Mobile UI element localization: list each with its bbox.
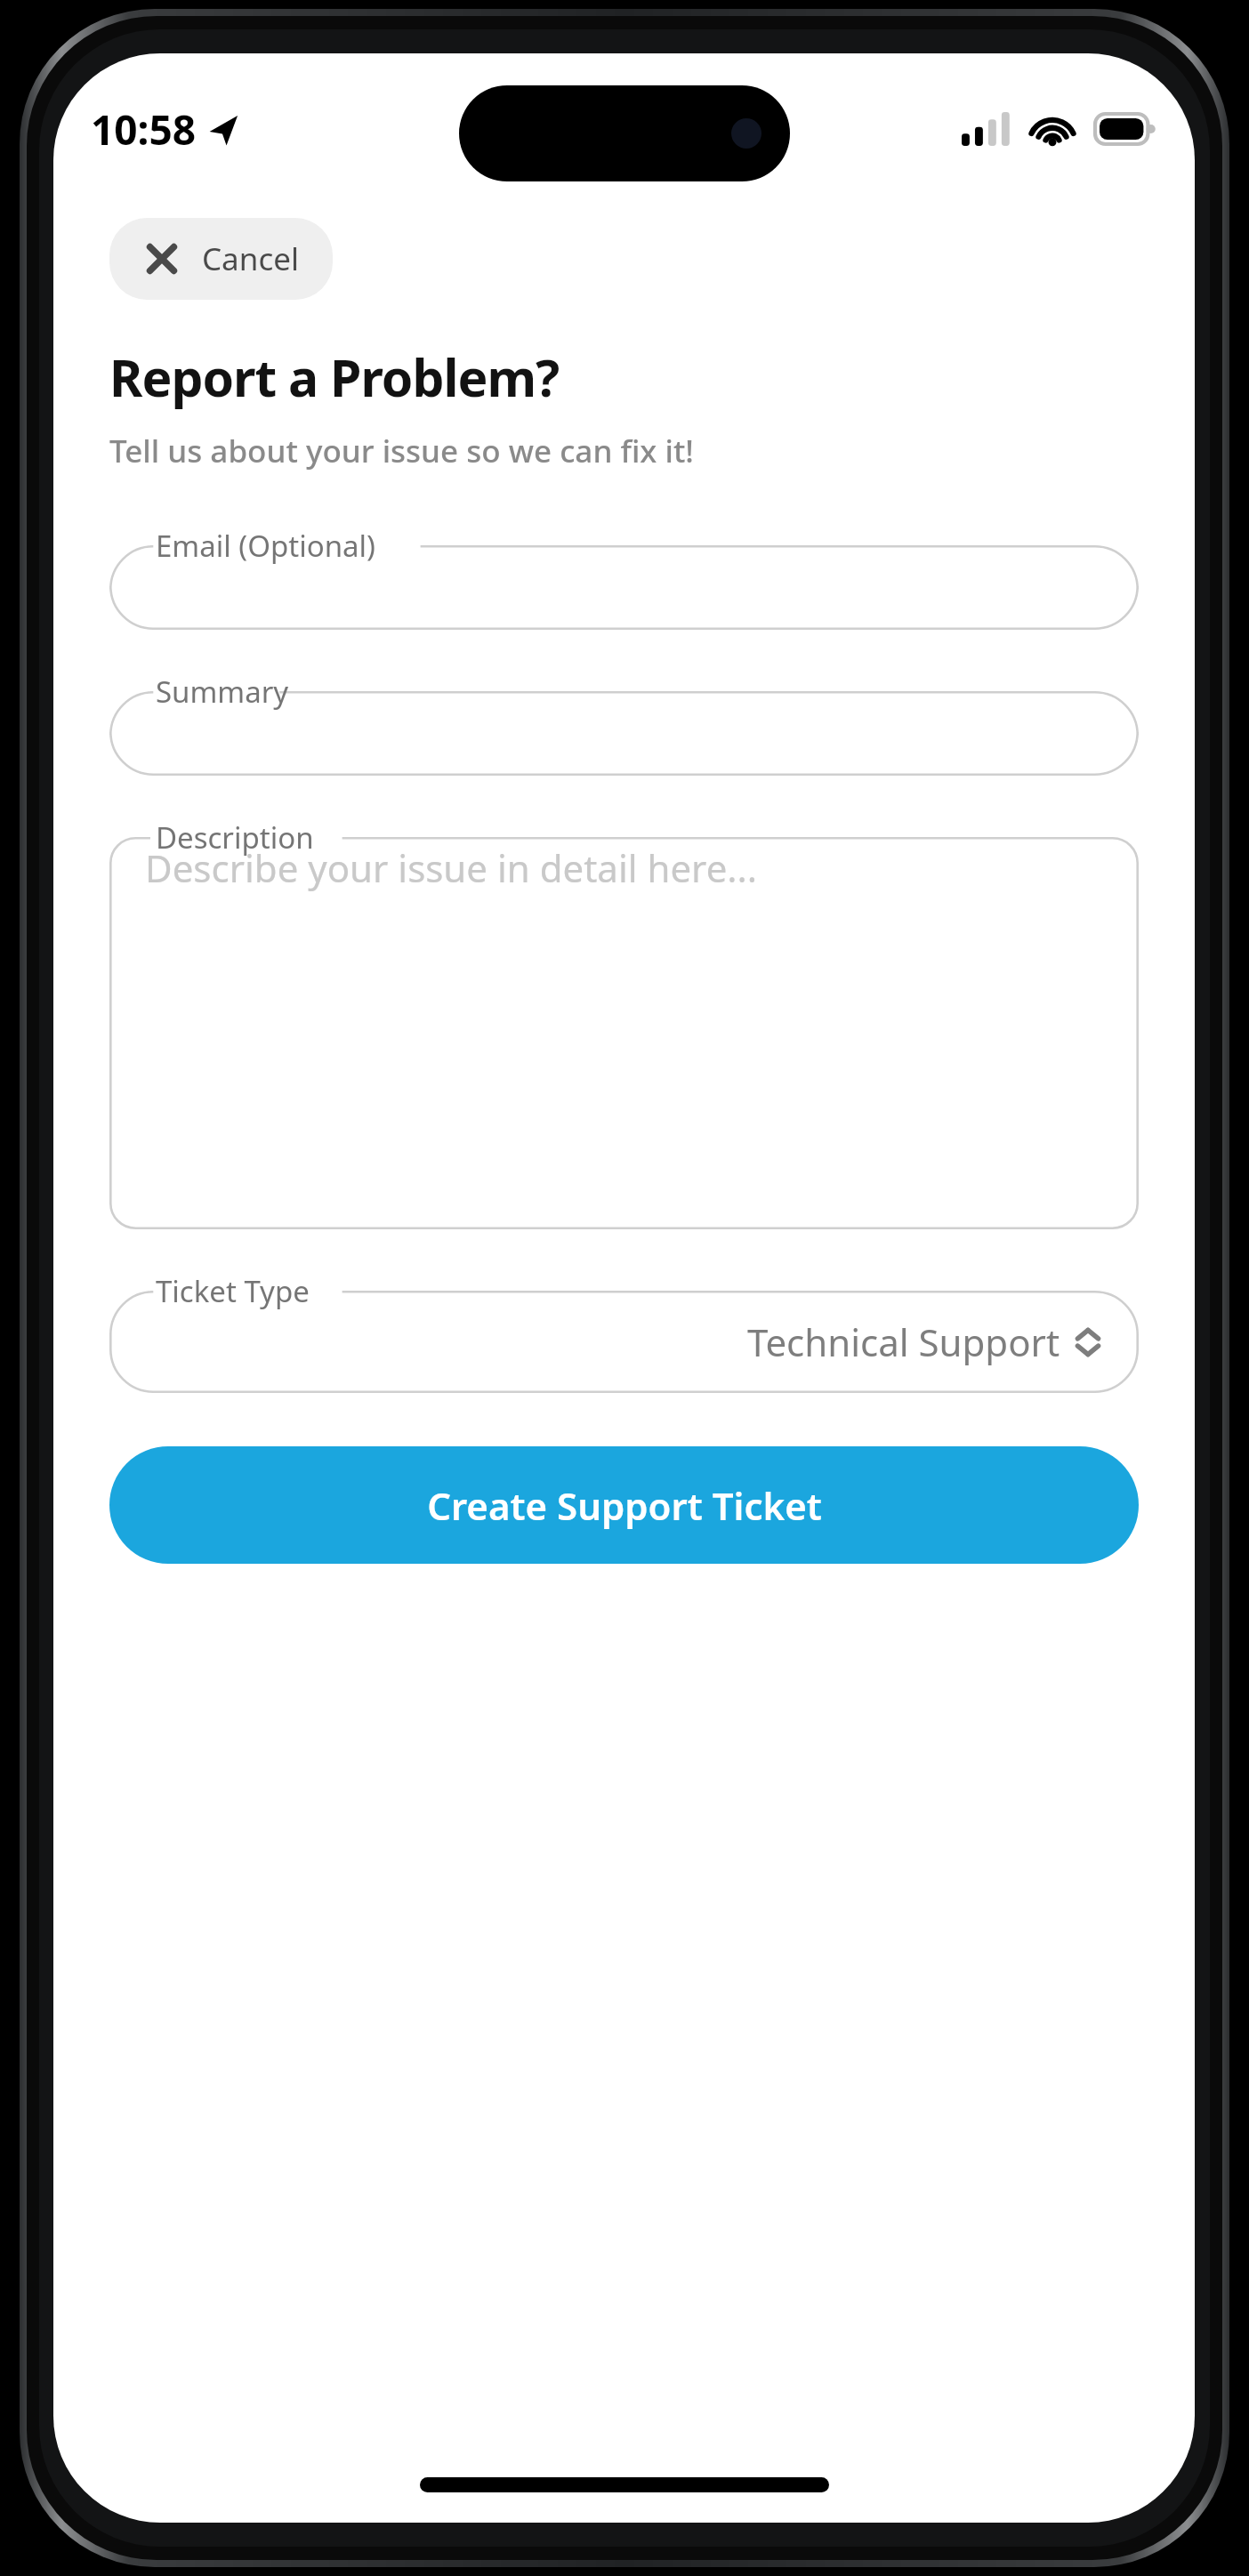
staticText: Cancel (202, 237, 299, 280)
staticText: Create Support Ticket (427, 1480, 822, 1531)
staticText: 10:58 (91, 101, 197, 157)
button[interactable] (109, 691, 1139, 776)
button[interactable]: Technical Support (109, 1291, 1139, 1393)
staticText: Describe your issue in detail here... (145, 842, 758, 893)
staticText: Email (Optional) (156, 526, 376, 566)
staticText: Tell us about your issue so we can fix i… (109, 430, 694, 472)
staticText: Ticket Type (156, 1271, 310, 1311)
button[interactable]: Cancel (109, 218, 333, 300)
staticText: Technical Support (747, 1316, 1060, 1367)
staticText: Description (156, 817, 314, 857)
button[interactable] (109, 545, 1139, 630)
staticText: Summary (156, 672, 289, 712)
button[interactable]: Describe your issue in detail here... (109, 837, 1139, 1229)
button[interactable]: Create Support Ticket (109, 1446, 1139, 1564)
staticText: Report a Problem? (109, 342, 560, 412)
